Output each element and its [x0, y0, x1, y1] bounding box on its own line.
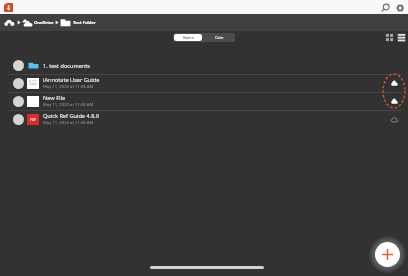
staticText: Date	[215, 35, 224, 40]
staticText: May 11, 2023 at 11:08 AM	[43, 84, 94, 90]
staticText: Test Folder	[73, 20, 96, 26]
staticText: Name	[183, 35, 194, 40]
staticText: May 11, 2023 at 11:08 AM	[43, 102, 94, 108]
button[interactable]: Add	[375, 242, 400, 267]
button[interactable]: iAnnotate	[4, 3, 13, 12]
button[interactable]: Date	[203, 33, 235, 42]
staticText: May 11, 2023 at 11:08 AM	[43, 120, 94, 126]
button[interactable]: Grid view	[384, 32, 395, 43]
button[interactable]: Name	[174, 34, 202, 41]
staticText: OneDrive	[34, 20, 54, 26]
staticText: Quick Ref Guide 4.8.9	[43, 112, 100, 120]
button[interactable]: Settings	[393, 0, 407, 14]
button[interactable]: New File	[0, 93, 408, 110]
staticText: New File	[43, 94, 66, 102]
button[interactable]: 1. test documents	[0, 57, 408, 74]
staticText: 1. test documents	[43, 62, 90, 70]
button[interactable]: List view	[396, 32, 407, 43]
staticText: PDF	[30, 118, 37, 122]
button[interactable]: Search	[379, 0, 393, 14]
button[interactable]: OneDrive	[22, 14, 54, 31]
button[interactable]: iAnnotate User Guide	[0, 75, 408, 92]
button[interactable]: Test Folder	[60, 14, 96, 31]
button[interactable]: PDF	[0, 111, 408, 128]
button[interactable]: Cloud root	[4, 19, 15, 26]
staticText: iAnnotate User Guide	[43, 76, 100, 84]
